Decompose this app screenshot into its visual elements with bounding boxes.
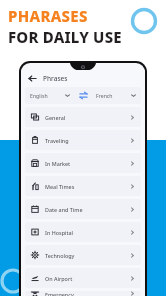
button[interactable]: In Hospital — [25, 222, 141, 242]
staticText: Traveling — [45, 137, 130, 144]
staticText: English — [30, 92, 48, 99]
staticText: Date and Time — [45, 206, 130, 213]
button[interactable]: Traveling — [25, 130, 141, 150]
button[interactable]: Back — [21, 70, 145, 87]
staticText: In Hospital — [45, 229, 130, 236]
staticText: In Market — [45, 160, 130, 167]
staticText: Phrases — [43, 74, 68, 83]
button[interactable]: General — [25, 107, 141, 127]
staticText: General — [45, 114, 130, 121]
button[interactable]: In Market — [25, 153, 141, 173]
button[interactable]: Meal Times — [25, 176, 141, 196]
staticText: On Airport — [45, 275, 130, 282]
button[interactable]: Date and Time — [25, 199, 141, 219]
button[interactable]: French — [91, 87, 141, 104]
staticText: FOR DAILY USE — [8, 27, 122, 47]
button[interactable]: English — [25, 87, 75, 104]
button[interactable]: Back — [27, 73, 38, 84]
staticText: Emergency — [45, 291, 130, 296]
button[interactable]: Swap languages — [75, 87, 91, 104]
button[interactable]: Technology — [25, 245, 141, 265]
button[interactable]: On Airport — [25, 268, 141, 288]
button[interactable]: Emergency — [25, 291, 141, 296]
staticText: PHARASES — [8, 6, 88, 26]
staticText: Meal Times — [45, 183, 130, 190]
staticText: Technology — [45, 252, 130, 259]
staticText: French — [96, 92, 113, 99]
